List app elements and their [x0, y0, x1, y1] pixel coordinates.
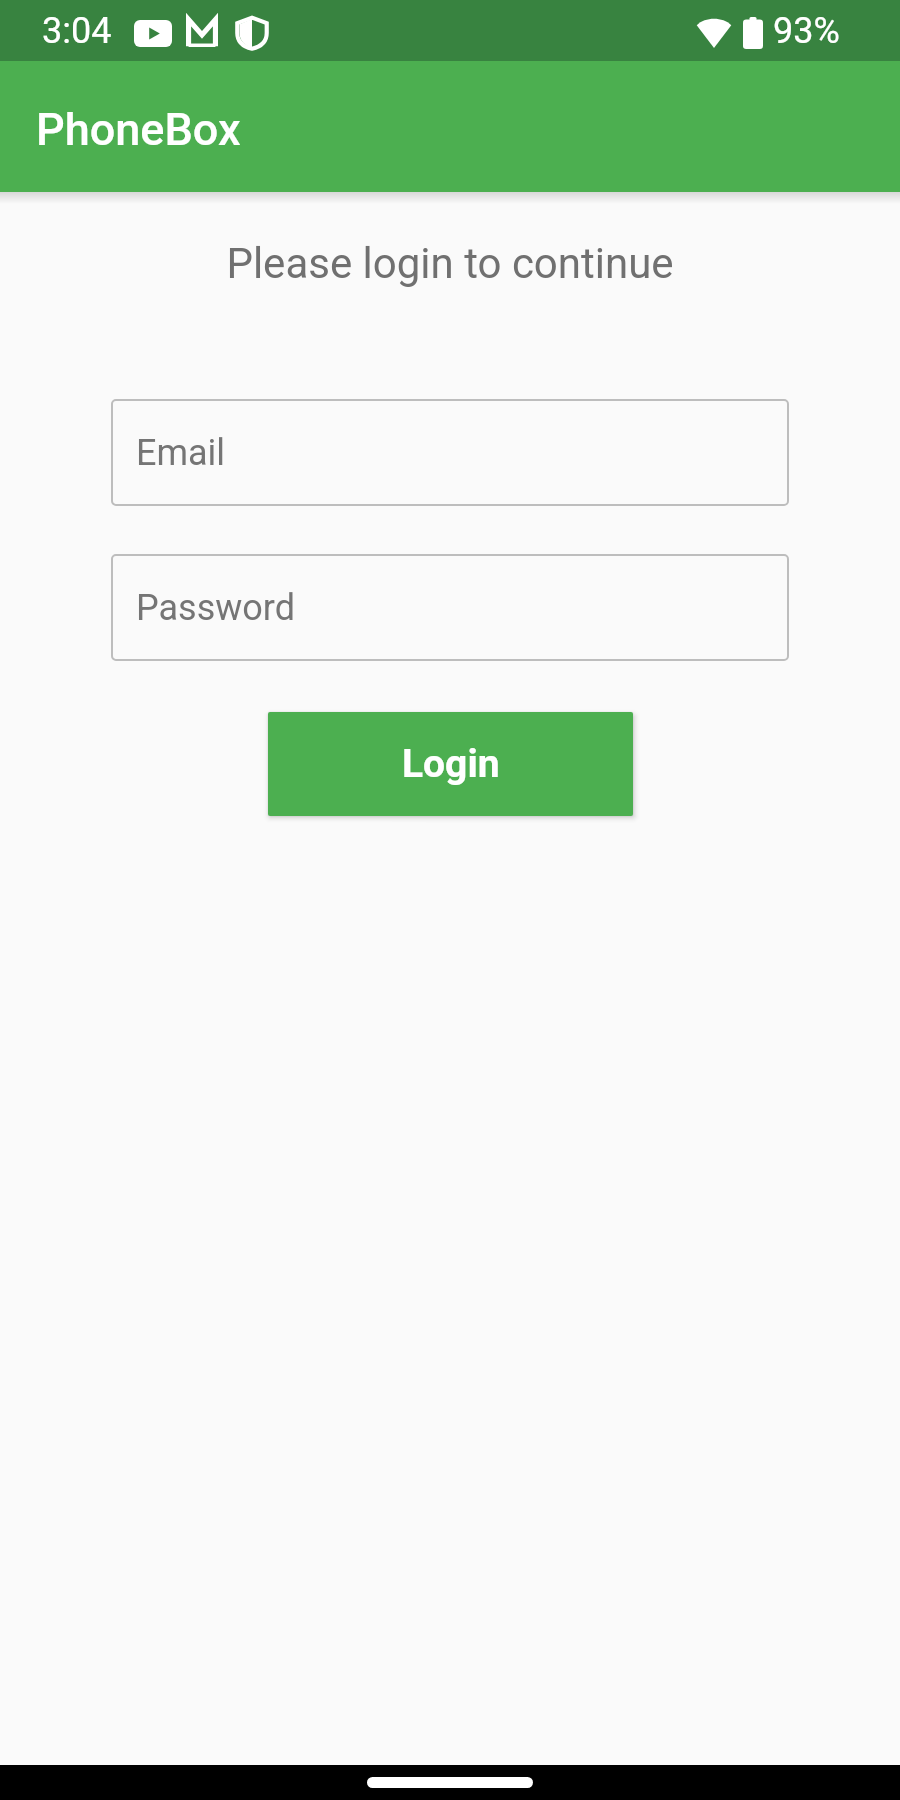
staticText: PhoneBox [36, 103, 241, 156]
other: Gmail notification [186, 18, 218, 47]
button[interactable]: Password [111, 554, 789, 661]
button[interactable]: Email [111, 399, 789, 506]
staticText: Please login to continue [0, 239, 900, 288]
staticText: Password [136, 587, 296, 629]
staticText: 3:04 [42, 10, 112, 52]
other: YouTube notification [134, 20, 172, 47]
other: Security notification [236, 17, 268, 49]
button[interactable]: Login [268, 712, 633, 816]
staticText: Email [136, 432, 226, 474]
other: Battery 93 percent [743, 17, 763, 49]
staticText: 93% [773, 10, 840, 52]
staticText: Login [402, 741, 500, 787]
other: Wi-Fi signal [696, 15, 732, 49]
